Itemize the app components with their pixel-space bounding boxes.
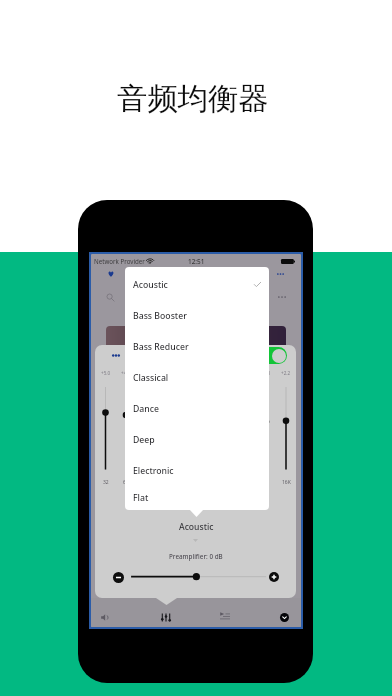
staticText: Flat	[133, 492, 149, 504]
button[interactable]: Playlist	[212, 603, 238, 627]
staticText: 12:51	[188, 257, 205, 266]
button[interactable]: Electronic	[125, 455, 269, 486]
staticText: +5.0	[101, 370, 111, 376]
button[interactable]: Deep	[125, 424, 269, 455]
button[interactable]: Acoustic	[125, 269, 269, 300]
button[interactable]: Equalizer	[153, 604, 179, 627]
button[interactable]: Increase preamplifier	[265, 568, 283, 586]
button[interactable]: Flat	[125, 486, 269, 510]
staticText: Acoustic	[133, 279, 168, 291]
staticText: Dance	[133, 403, 160, 415]
staticText: Bass Reducer	[133, 341, 189, 353]
button[interactable]: Favourites	[102, 265, 119, 282]
staticText: 64	[123, 479, 129, 486]
staticText: 32	[103, 479, 109, 486]
staticText: Electronic	[133, 465, 174, 477]
button[interactable]: Band 125	[136, 370, 156, 490]
button[interactable]: Bass Booster	[125, 300, 269, 331]
button[interactable]: Band 64	[116, 370, 136, 490]
button[interactable]: Band 8K	[256, 370, 276, 490]
staticText: 音频均衡器	[117, 80, 269, 118]
staticText: +4.1	[121, 370, 131, 376]
button[interactable]: More options	[272, 265, 289, 282]
staticText: +2.2	[161, 370, 171, 376]
staticText: 16K	[282, 479, 291, 486]
button[interactable]: Search	[102, 289, 119, 306]
button[interactable]: Band 32	[95, 370, 116, 490]
button[interactable]: Collapse	[271, 604, 297, 627]
button[interactable]: Bass Reducer	[125, 331, 269, 362]
button[interactable]: Classical	[125, 362, 269, 393]
staticText: Acoustic	[179, 521, 214, 533]
button[interactable]: Band 250	[156, 370, 176, 490]
button[interactable]: Presets menu	[107, 347, 124, 364]
button[interactable]: Enable equalizer	[256, 347, 287, 364]
staticText: +2.2	[281, 370, 291, 376]
staticText: Bass Booster	[133, 310, 187, 322]
button[interactable]: Dance	[125, 393, 269, 424]
button[interactable]: Band 16K	[276, 370, 296, 490]
button[interactable]: Decrease preamplifier	[109, 568, 127, 586]
staticText: Classical	[133, 372, 169, 384]
staticText: +2.0	[261, 370, 271, 376]
button[interactable]: Overflow	[273, 288, 290, 305]
staticText: Network Provider	[94, 257, 145, 265]
staticText: Preamplifier: 0 dB	[169, 552, 223, 561]
staticText: Deep	[133, 434, 155, 446]
button[interactable]: Volume	[92, 604, 118, 627]
